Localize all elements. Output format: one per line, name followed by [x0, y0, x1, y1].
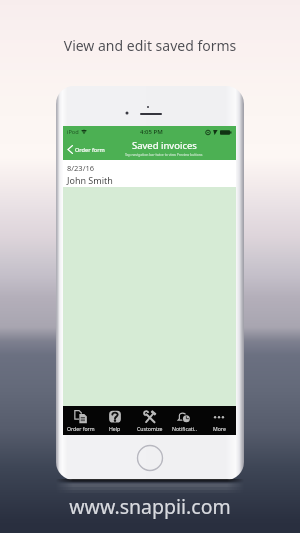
staticText: Notificati..	[172, 425, 197, 432]
staticText: Saved invoices	[132, 139, 197, 152]
staticText: Tap navigation bar twice to view Preview…	[125, 152, 203, 157]
staticText: Order form	[75, 146, 105, 154]
staticText: 8/23/16	[67, 163, 95, 173]
button[interactable]: More	[202, 406, 236, 435]
button[interactable]: Notifications	[167, 406, 201, 435]
staticText: Customize	[137, 425, 163, 432]
staticText: View and edit saved forms	[0, 36, 300, 55]
staticText: Order form	[67, 425, 95, 432]
staticText: www.snappii.com	[0, 493, 300, 520]
button[interactable]: Order form	[67, 145, 105, 154]
staticText: 4:05 PM	[140, 128, 163, 136]
button[interactable]: 8/23/16	[63, 160, 236, 187]
staticText: More	[213, 425, 226, 432]
staticText: iPod	[67, 128, 79, 136]
staticText: John Smith	[67, 174, 113, 186]
button[interactable]: Customize	[133, 406, 167, 435]
staticText: Help	[109, 425, 121, 432]
button[interactable]: Help	[98, 406, 132, 435]
button[interactable]: Order form	[64, 406, 98, 435]
